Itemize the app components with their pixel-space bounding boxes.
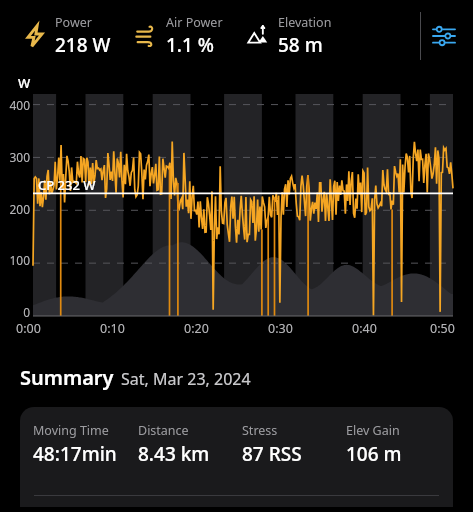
staticText: 0:10	[100, 320, 125, 337]
button[interactable]: Air Power	[135, 14, 223, 58]
staticText: 8.43 km	[138, 441, 210, 467]
button[interactable]: Chart settings	[421, 8, 467, 64]
staticText: 0	[0, 304, 30, 320]
staticText: Stress	[242, 422, 278, 439]
staticText: Elevation	[278, 14, 332, 31]
staticText: CP 232 W	[38, 176, 96, 194]
button[interactable]: Power	[24, 14, 111, 58]
staticText: 106 m	[346, 441, 402, 467]
staticText: 0:40	[352, 320, 377, 337]
staticText: 0:30	[268, 320, 293, 337]
button[interactable]: Elevation	[247, 14, 332, 58]
staticText: 0:50	[430, 320, 455, 337]
staticText: 100	[0, 252, 30, 268]
staticText: 48:17min	[33, 441, 117, 467]
staticText: 218 W	[55, 32, 111, 58]
staticText: 87 RSS	[242, 441, 302, 467]
staticText: 300	[0, 149, 30, 165]
staticText: 58 m	[278, 32, 323, 58]
staticText: Summary	[20, 364, 114, 391]
staticText: 200	[0, 201, 30, 217]
staticText: 400	[0, 97, 30, 113]
staticText: Distance	[138, 422, 189, 439]
button[interactable]: Moving Time	[20, 407, 453, 507]
staticText: Air Power	[166, 14, 223, 31]
staticText: Power	[55, 14, 92, 31]
staticText: 0:20	[184, 320, 209, 337]
staticText: 0:00	[16, 320, 41, 337]
staticText: W	[18, 74, 31, 92]
staticText: 1.1 %	[166, 32, 215, 58]
staticText: Elev Gain	[346, 422, 400, 439]
staticText: Moving Time	[33, 422, 109, 439]
staticText: Sat, Mar 23, 2024	[121, 368, 251, 390]
